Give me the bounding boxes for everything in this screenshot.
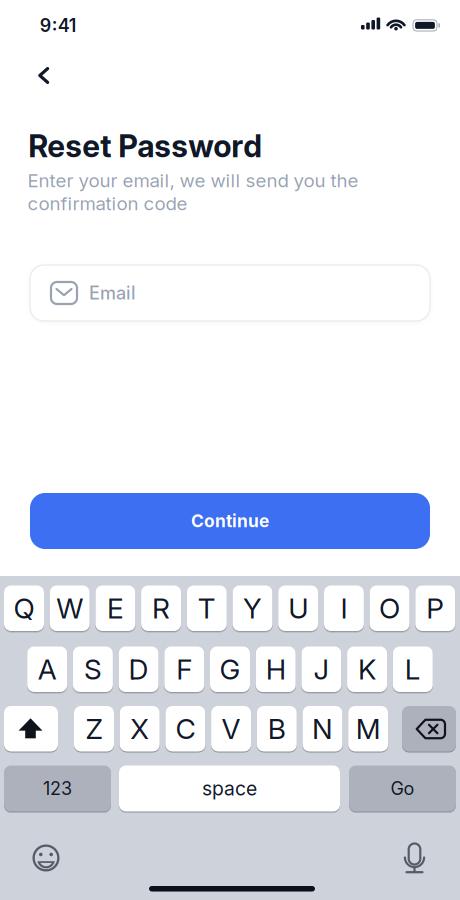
- staticText: J: [313, 652, 329, 686]
- button[interactable]: Go: [349, 765, 456, 811]
- button[interactable]: Q: [4, 585, 44, 631]
- staticText: Z: [85, 712, 102, 746]
- staticText: space: [202, 777, 257, 800]
- staticText: D: [129, 652, 149, 686]
- button[interactable]: Delete: [402, 706, 456, 751]
- button[interactable]: H: [256, 646, 296, 692]
- button[interactable]: Dictation: [401, 841, 427, 875]
- staticText: M: [356, 712, 381, 746]
- button[interactable]: 123: [4, 765, 111, 811]
- button[interactable]: M: [348, 706, 388, 751]
- button[interactable]: Shift: [4, 706, 58, 751]
- staticText: B: [268, 712, 286, 746]
- staticText: U: [288, 591, 308, 625]
- button[interactable]: Email: [30, 265, 430, 321]
- button[interactable]: S: [73, 646, 113, 692]
- staticText: A: [38, 652, 57, 686]
- staticText: T: [198, 591, 216, 625]
- staticText: G: [219, 652, 240, 686]
- button[interactable]: W: [50, 585, 90, 631]
- staticText: Go: [390, 778, 414, 799]
- button[interactable]: E: [95, 585, 135, 631]
- staticText: Y: [243, 591, 262, 625]
- staticText: Email: [89, 282, 136, 304]
- button[interactable]: P: [415, 585, 455, 631]
- staticText: N: [312, 712, 333, 746]
- staticText: P: [426, 591, 444, 625]
- button[interactable]: I: [324, 585, 364, 631]
- button[interactable]: J: [301, 646, 341, 692]
- button[interactable]: F: [164, 646, 204, 692]
- staticText: L: [405, 652, 421, 686]
- staticText: V: [222, 712, 241, 746]
- button[interactable]: X: [120, 706, 160, 751]
- staticText: O: [379, 591, 400, 625]
- button[interactable]: C: [165, 706, 205, 751]
- staticText: Q: [13, 591, 34, 625]
- staticText: Reset Password: [28, 127, 262, 165]
- button[interactable]: U: [278, 585, 318, 631]
- button[interactable]: B: [257, 706, 297, 751]
- button[interactable]: N: [302, 706, 342, 751]
- button[interactable]: Z: [74, 706, 114, 751]
- staticText: F: [176, 652, 192, 686]
- button[interactable]: T: [187, 585, 227, 631]
- button[interactable]: G: [210, 646, 250, 692]
- button[interactable]: R: [141, 585, 181, 631]
- staticText: Continue: [191, 510, 269, 531]
- button[interactable]: Continue: [30, 493, 430, 549]
- staticText: K: [358, 652, 376, 686]
- button[interactable]: V: [211, 706, 251, 751]
- button[interactable]: L: [393, 646, 433, 692]
- button[interactable]: A: [27, 646, 67, 692]
- staticText: S: [84, 652, 102, 686]
- staticText: R: [152, 591, 170, 625]
- button[interactable]: Emoji: [30, 842, 62, 874]
- staticText: 123: [43, 778, 72, 799]
- button[interactable]: Back: [34, 64, 53, 87]
- staticText: 9:41: [40, 14, 77, 36]
- staticText: I: [340, 591, 347, 625]
- staticText: H: [266, 652, 286, 686]
- button[interactable]: D: [119, 646, 159, 692]
- button[interactable]: O: [370, 585, 410, 631]
- staticText: Enter your email, we will send you the c…: [28, 169, 359, 215]
- staticText: E: [107, 591, 124, 625]
- staticText: W: [56, 591, 83, 625]
- button[interactable]: Y: [232, 585, 272, 631]
- staticText: X: [130, 712, 149, 746]
- staticText: C: [175, 712, 195, 746]
- button[interactable]: K: [347, 646, 387, 692]
- button[interactable]: space: [119, 765, 340, 811]
